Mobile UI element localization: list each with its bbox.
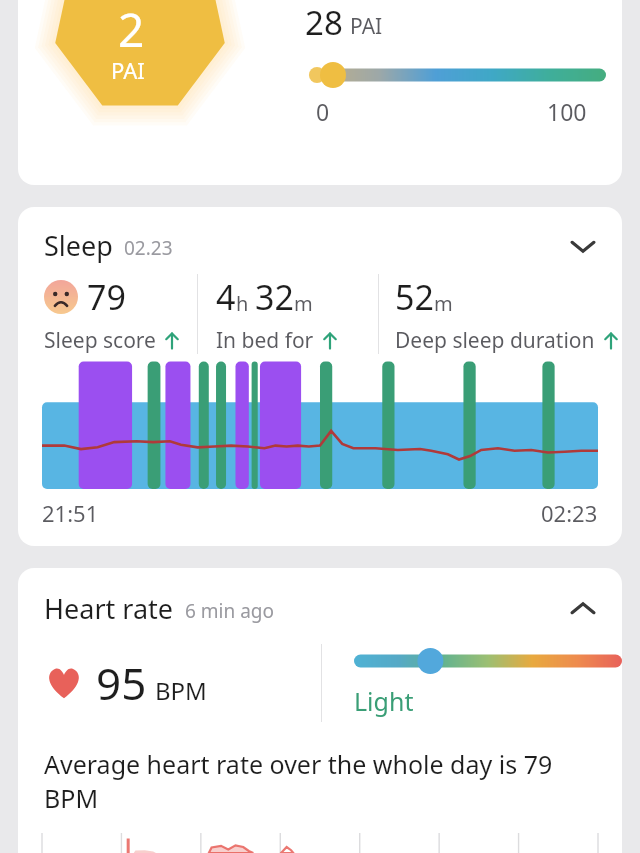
- staticText: 0: [316, 96, 330, 127]
- button[interactable]: 79: [18, 272, 197, 356]
- staticText: Deep sleep duration: [395, 326, 595, 355]
- staticText: 6 min ago: [185, 598, 274, 624]
- button[interactable]: Heart rate: [18, 568, 622, 629]
- button[interactable]: 2: [18, 0, 622, 185]
- staticText: 4: [216, 274, 236, 320]
- staticText: 79: [87, 274, 126, 320]
- staticText: m: [434, 290, 453, 317]
- button[interactable]: Light: [322, 629, 622, 737]
- staticText: Sleep score: [44, 326, 156, 355]
- staticText: Light: [354, 684, 414, 718]
- other: Expand sleep: [566, 229, 600, 263]
- staticText: 32: [255, 274, 294, 320]
- staticText: h: [236, 290, 249, 317]
- button[interactable]: 95: [18, 629, 321, 737]
- button[interactable]: 52: [379, 272, 622, 356]
- staticText: 52: [395, 274, 434, 320]
- staticText: 28: [305, 0, 343, 45]
- staticText: 21:51: [42, 498, 99, 528]
- other: Collapse heart rate: [566, 592, 600, 626]
- staticText: Average heart rate over the whole day is…: [44, 747, 602, 815]
- staticText: PAI: [350, 12, 383, 41]
- staticText: PAI: [111, 55, 145, 85]
- staticText: BPM: [155, 674, 207, 707]
- staticText: 95: [96, 653, 147, 713]
- button[interactable]: Sleep: [18, 207, 622, 268]
- button[interactable]: 4: [198, 272, 378, 356]
- staticText: 02.23: [124, 235, 173, 261]
- staticText: Heart rate: [44, 590, 174, 627]
- staticText: 100: [547, 96, 587, 127]
- staticText: 02:23: [541, 498, 598, 528]
- staticText: In bed for: [216, 326, 314, 355]
- staticText: m: [294, 290, 313, 317]
- staticText: Sleep: [44, 227, 113, 264]
- staticText: 2: [118, 0, 145, 61]
